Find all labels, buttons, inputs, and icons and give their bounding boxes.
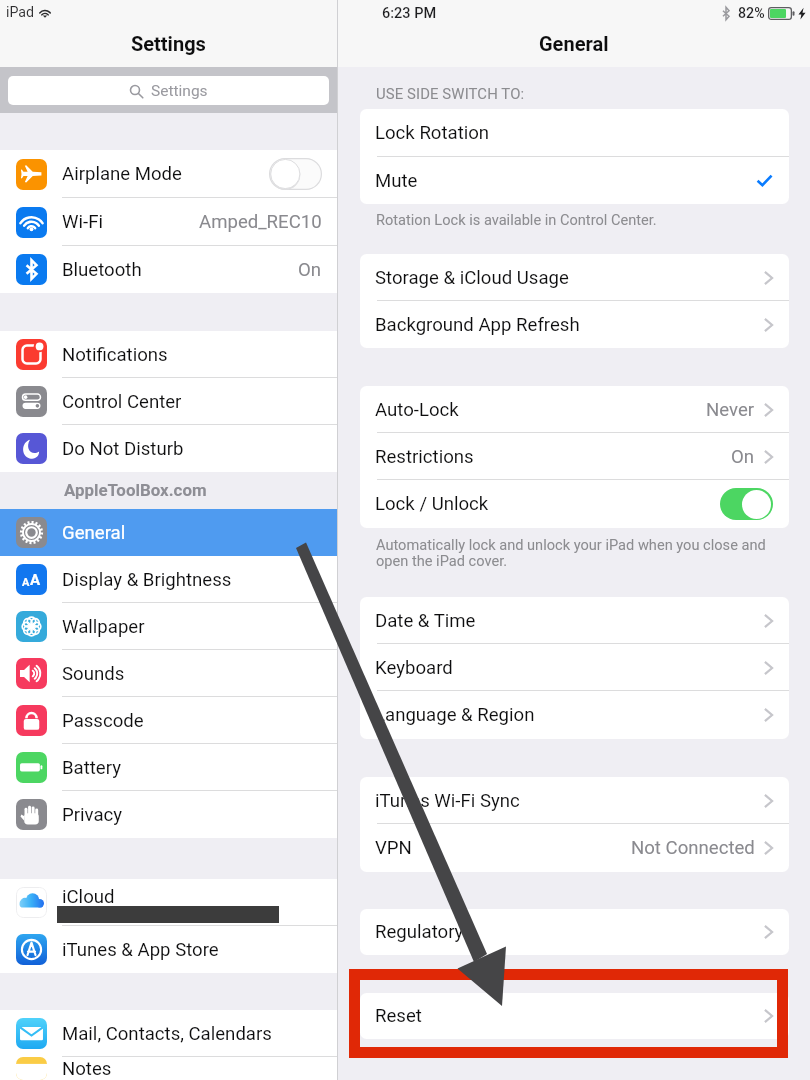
button[interactable]: Date & Time xyxy=(360,597,789,644)
button[interactable]: Sounds xyxy=(0,650,337,697)
button[interactable]: Keyboard xyxy=(360,644,789,691)
staticText: USE SIDE SWITCH TO: xyxy=(376,85,525,102)
staticText: Mute xyxy=(375,170,418,192)
button[interactable]: Lock Rotation xyxy=(360,109,789,157)
staticText: Settings xyxy=(131,32,206,55)
staticText: Lock / Unlock xyxy=(375,493,489,515)
button[interactable]: Wallpaper xyxy=(0,603,337,650)
staticText: Notes xyxy=(62,1058,112,1080)
staticText: Wallpaper xyxy=(62,616,145,638)
staticText: Control Center xyxy=(62,391,182,413)
staticText: Battery xyxy=(62,757,121,779)
button[interactable]: Background App Refresh xyxy=(360,301,789,348)
staticText: Background App Refresh xyxy=(375,314,580,336)
button[interactable]: Notes xyxy=(0,1057,337,1080)
button[interactable]: Regulatory xyxy=(360,909,789,955)
button[interactable]: General xyxy=(0,509,337,556)
staticText: Date & Time xyxy=(375,610,476,632)
staticText: On xyxy=(298,259,322,281)
staticText: Keyboard xyxy=(375,657,453,679)
staticText: 82% xyxy=(738,5,765,22)
staticText: On xyxy=(731,446,755,468)
staticText: Notifications xyxy=(62,344,168,366)
button[interactable]: Mute xyxy=(360,157,789,204)
staticText: iPad xyxy=(6,4,35,21)
staticText: Lock Rotation xyxy=(375,122,490,144)
staticText: Regulatory xyxy=(375,921,464,943)
button[interactable]: Do Not Disturb xyxy=(0,425,337,472)
button[interactable]: Airplane Mode off xyxy=(269,158,322,190)
staticText: Auto-Lock xyxy=(375,399,459,421)
button[interactable]: Auto-Lock xyxy=(360,386,789,433)
staticText: Sounds xyxy=(62,663,125,685)
button[interactable]: Wi-Fi xyxy=(0,198,337,246)
staticText: Passcode xyxy=(62,710,144,732)
button[interactable]: Language & Region xyxy=(360,691,789,738)
button[interactable]: Mail, Contacts, Calendars xyxy=(0,1010,337,1057)
staticText: VPN xyxy=(375,837,412,859)
staticText: Do Not Disturb xyxy=(62,438,184,460)
button[interactable]: Control Center xyxy=(0,378,337,425)
button[interactable]: VPN xyxy=(360,824,789,871)
staticText: General xyxy=(62,522,126,544)
button[interactable]: Privacy xyxy=(0,791,337,838)
staticText: Display & Brightness xyxy=(62,569,232,591)
staticText: Not Connected xyxy=(631,837,755,859)
staticText: 6:23 PM xyxy=(382,5,437,22)
button[interactable]: iCloud xyxy=(0,879,337,926)
staticText: Privacy xyxy=(62,804,123,826)
button[interactable]: Notifications xyxy=(0,331,337,378)
staticText: A xyxy=(22,576,30,589)
staticText: Airplane Mode xyxy=(62,163,182,185)
staticText: iTunes Wi-Fi Sync xyxy=(375,790,520,812)
staticText: Reset xyxy=(375,1005,422,1027)
staticText: Bluetooth xyxy=(62,259,142,281)
button[interactable]: Reset xyxy=(360,993,789,1039)
button[interactable]: Lock / Unlock xyxy=(360,480,789,527)
staticText: Wi-Fi xyxy=(62,211,103,233)
staticText: Restrictions xyxy=(375,446,474,468)
button[interactable]: iTunes & App Store xyxy=(0,926,337,973)
staticText: AppleToolBox.com xyxy=(64,480,207,500)
button[interactable]: Settings xyxy=(8,76,329,105)
staticText: Settings xyxy=(151,82,208,100)
staticText: Amped_REC10 xyxy=(199,211,322,233)
staticText: iCloud xyxy=(62,886,115,908)
staticText: Language & Region xyxy=(375,704,535,726)
staticText: Mail, Contacts, Calendars xyxy=(62,1023,272,1045)
button[interactable]: Airplane Mode xyxy=(0,150,337,198)
staticText: Never xyxy=(706,399,755,421)
staticText: A xyxy=(30,571,41,589)
button[interactable]: Lock / Unlock on xyxy=(720,488,773,520)
staticText: Rotation Lock is available in Control Ce… xyxy=(376,211,657,228)
staticText: Storage & iCloud Usage xyxy=(375,267,569,289)
staticText: iTunes & App Store xyxy=(62,939,219,961)
button[interactable]: Bluetooth xyxy=(0,246,337,293)
button[interactable]: Battery xyxy=(0,744,337,791)
button[interactable]: Passcode xyxy=(0,697,337,744)
staticText: Automatically lock and unlock your iPad … xyxy=(376,536,778,570)
button[interactable]: Restrictions xyxy=(360,433,789,480)
button[interactable]: Storage & iCloud Usage xyxy=(360,254,789,301)
button[interactable]: A xyxy=(0,556,337,603)
staticText: General xyxy=(539,32,609,55)
button[interactable]: iTunes Wi-Fi Sync xyxy=(360,777,789,824)
